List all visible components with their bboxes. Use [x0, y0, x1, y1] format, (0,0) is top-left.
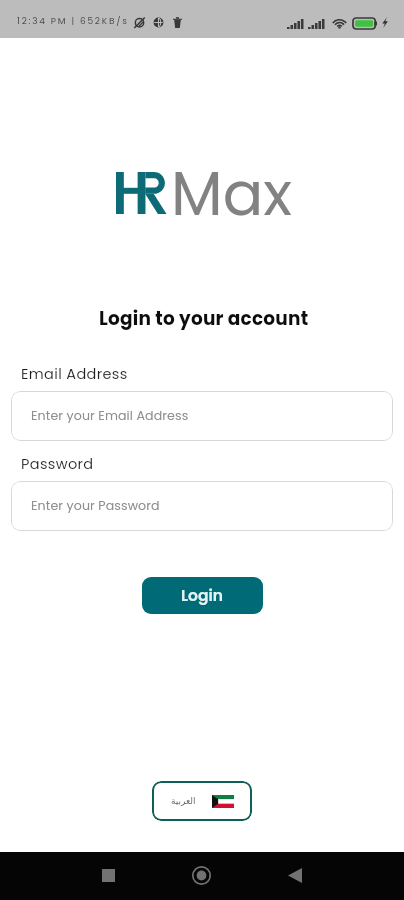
- button[interactable]: Enter your Password: [11, 481, 393, 531]
- staticText: Login to your account: [99, 306, 309, 332]
- button[interactable]: Enter your Email Address: [11, 391, 393, 441]
- button[interactable]: Back: [272, 853, 317, 898]
- button[interactable]: العربية: [152, 781, 252, 821]
- staticText: Max: [171, 152, 292, 236]
- staticText: Password: [21, 454, 94, 474]
- button[interactable]: Recent apps: [86, 853, 131, 898]
- button[interactable]: Login: [142, 577, 263, 614]
- staticText: Email Address: [21, 364, 128, 384]
- staticText: 12:34 PM | 652KB/s: [17, 15, 129, 28]
- button[interactable]: Home: [179, 853, 224, 898]
- staticText: Enter your Email Address: [31, 407, 189, 425]
- staticText: العربية: [171, 796, 196, 806]
- staticText: Enter your Password: [31, 497, 160, 515]
- staticText: Login: [181, 585, 224, 607]
